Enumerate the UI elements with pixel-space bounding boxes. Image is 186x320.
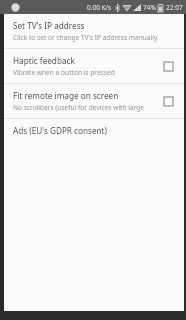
staticText: Vibrate when a button is pressed [13, 68, 115, 77]
staticText: 74% [143, 3, 156, 12]
staticText: Set TV's IP address [13, 20, 85, 31]
staticText: Fit remote image on screen [13, 90, 119, 101]
button[interactable]: Haptic feedback [4, 49, 184, 83]
button[interactable]: Set TV's IP address [4, 14, 184, 48]
staticText: Ads (EU's GDPR consent) [13, 125, 108, 136]
button[interactable]: Toggle Fit remote image on screen [159, 92, 177, 110]
staticText: 0.00 K/s [87, 3, 112, 12]
button[interactable]: Toggle Haptic feedback [159, 57, 177, 75]
staticText: Haptic feedback [13, 55, 75, 66]
staticText: 22:07 [166, 3, 183, 12]
staticText: Click to set or change TV's IP address m… [13, 33, 158, 42]
staticText: No scrollbars (useful for devices with l… [13, 103, 153, 112]
button[interactable]: Ads (EU's GDPR consent) [4, 119, 184, 142]
button[interactable]: Fit remote image on screen [4, 84, 184, 118]
